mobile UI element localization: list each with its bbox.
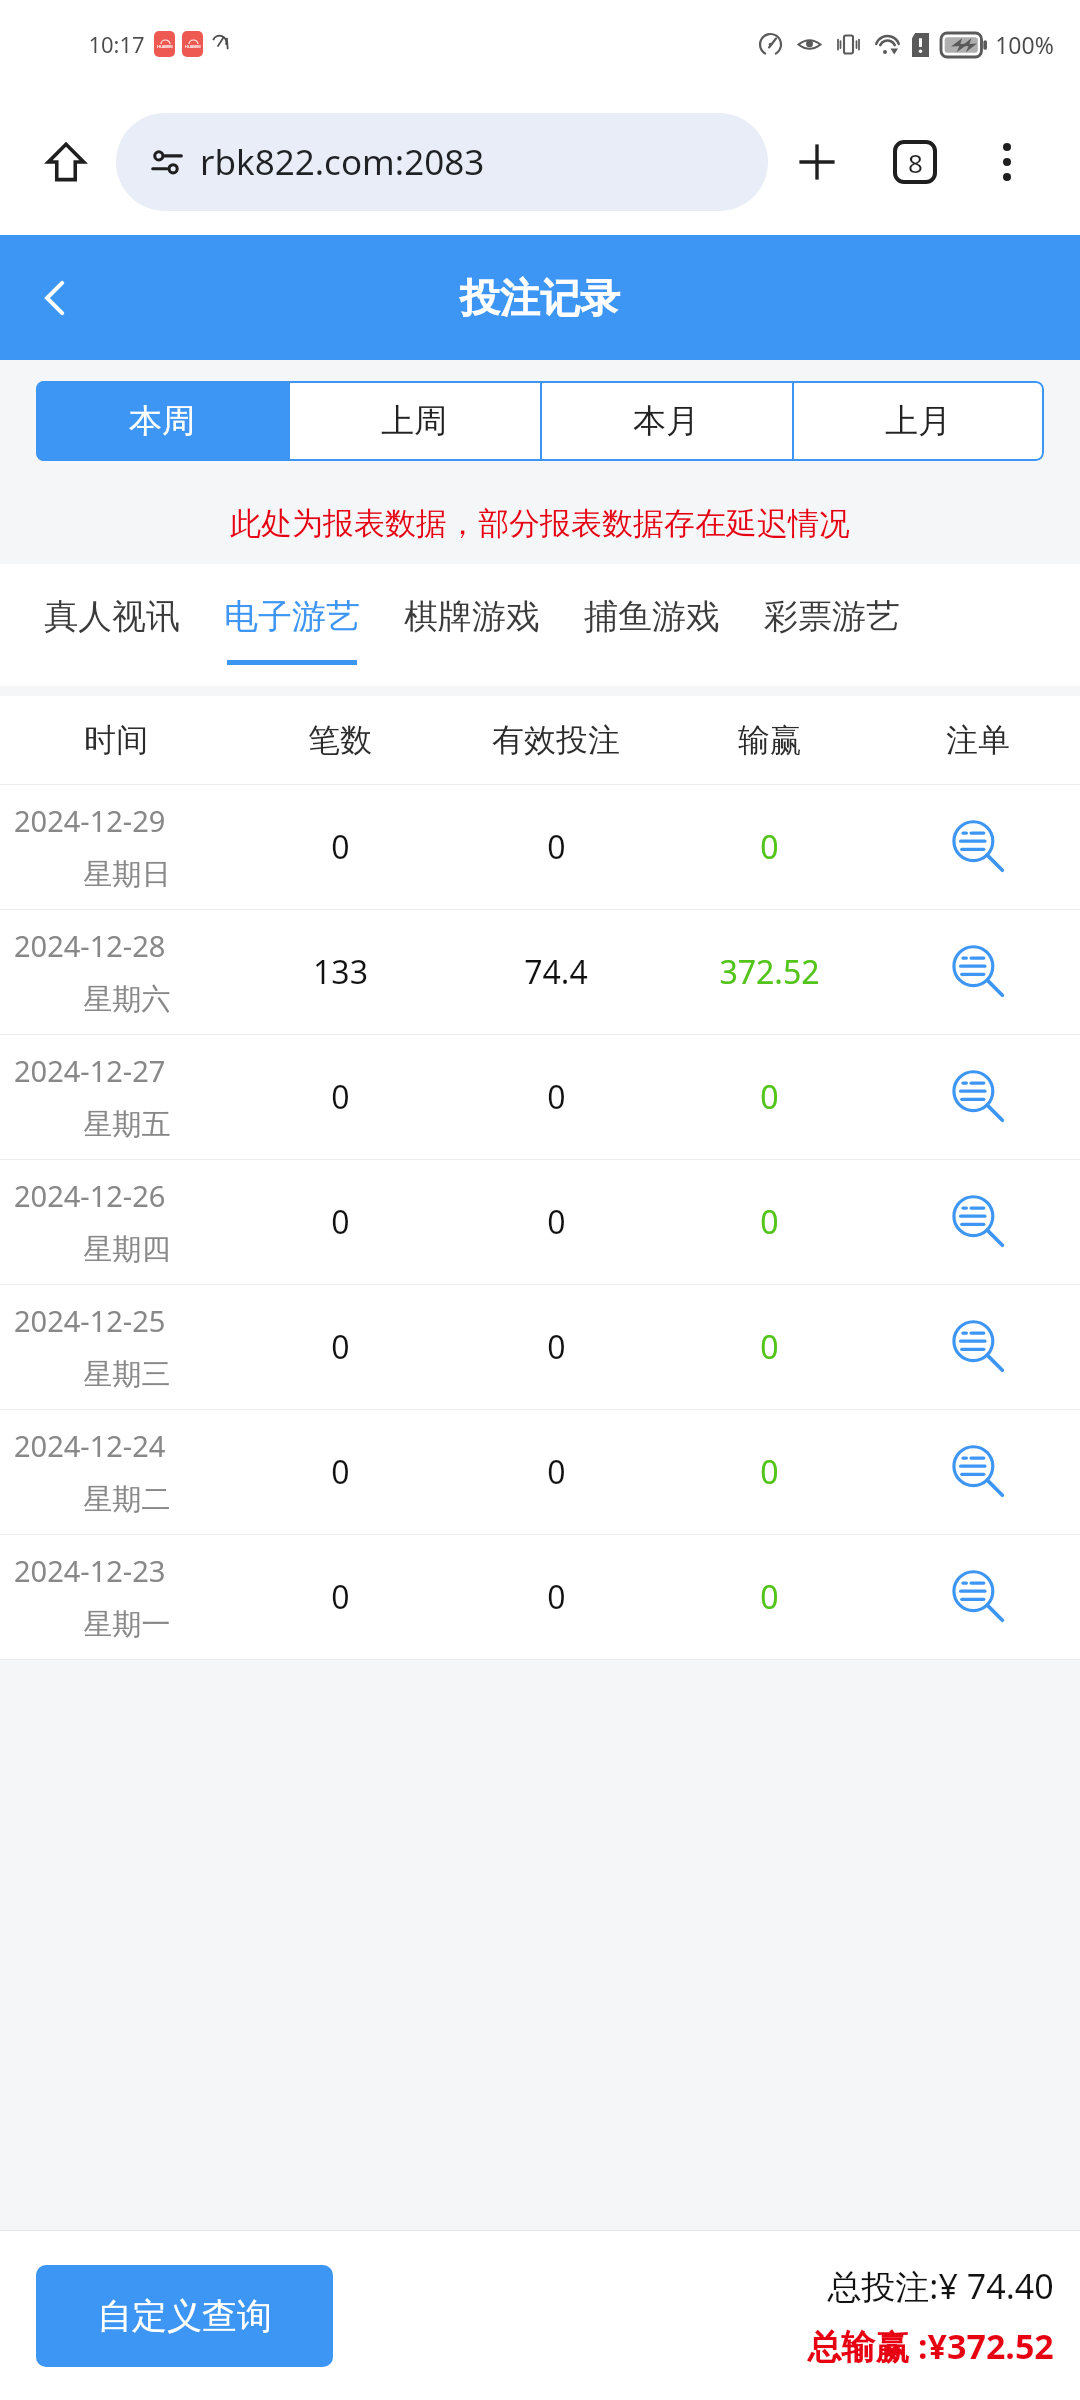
staticText: 2024-12-24 (14, 1426, 232, 1465)
button[interactable]: 上周 (288, 381, 540, 461)
staticText: 0 (331, 1325, 350, 1369)
button[interactable]: 查看注单 (936, 1430, 1020, 1514)
staticText: 上周 (381, 400, 447, 442)
button[interactable]: 查看注单 (936, 1055, 1020, 1139)
staticText: 0 (331, 1575, 350, 1619)
staticText: 10:17 (88, 29, 145, 59)
button[interactable]: 真人视讯 (22, 564, 202, 686)
staticText: 372.52 (719, 950, 820, 994)
staticText: 0 (760, 1575, 779, 1619)
staticText: 笔数 (308, 720, 372, 760)
staticText: 总输赢 :¥372.52 (807, 2323, 1054, 2369)
staticText: 0 (760, 825, 779, 869)
button[interactable]: 自定义查询 (36, 2265, 333, 2367)
staticText: 0 (547, 1575, 566, 1619)
button[interactable]: New tab (768, 113, 866, 211)
staticText: 星期三 (22, 1356, 232, 1393)
staticText: 0 (547, 1200, 566, 1244)
button[interactable]: 2024-12-27 (0, 1035, 1080, 1159)
button[interactable]: 查看注单 (936, 805, 1020, 889)
button[interactable]: 上月 (792, 381, 1044, 461)
staticText: 星期六 (22, 981, 232, 1018)
staticText: 0 (760, 1075, 779, 1119)
staticText: 有效投注 (492, 720, 620, 760)
button[interactable]: 2024-12-29 (0, 785, 1080, 909)
staticText: 2024-12-28 (14, 926, 232, 965)
button[interactable]: 2024-12-25 (0, 1285, 1080, 1409)
staticText: 0 (760, 1450, 779, 1494)
staticText: 星期二 (22, 1481, 232, 1518)
button[interactable]: 查看注单 (936, 1555, 1020, 1639)
staticText: 0 (547, 1450, 566, 1494)
staticText: 此处为报表数据，部分报表数据存在延迟情况 (230, 504, 850, 543)
button[interactable]: 本月 (540, 381, 792, 461)
staticText: 上月 (885, 400, 951, 442)
staticText: 0 (331, 1450, 350, 1494)
staticText: 8 (908, 145, 923, 180)
button[interactable]: rbk822.com:2083 (116, 113, 768, 211)
button[interactable]: Back (0, 235, 110, 360)
staticText: 投注记录 (460, 273, 620, 323)
button[interactable]: 查看注单 (936, 1180, 1020, 1264)
staticText: 2024-12-23 (14, 1551, 232, 1590)
button[interactable]: 2024-12-28 (0, 910, 1080, 1034)
staticText: 真人视讯 (44, 595, 180, 638)
staticText: 2024-12-29 (14, 801, 232, 840)
staticText: 133 (313, 950, 368, 994)
button[interactable]: 查看注单 (936, 1305, 1020, 1389)
staticText: 捕鱼游戏 (584, 595, 720, 638)
button[interactable]: 捕鱼游戏 (562, 564, 742, 686)
button[interactable]: 彩票游艺 (742, 564, 922, 686)
staticText: 100% (995, 29, 1054, 60)
button[interactable]: 查看注单 (936, 930, 1020, 1014)
staticText: 2024-12-27 (14, 1051, 232, 1090)
staticText: 0 (547, 1325, 566, 1369)
staticText: 0 (331, 825, 350, 869)
staticText: 2024-12-26 (14, 1176, 232, 1215)
staticText: 74.4 (524, 950, 588, 994)
staticText: 0 (547, 825, 566, 869)
staticText: HUAWEI (185, 44, 201, 49)
staticText: HUAWEI (157, 44, 173, 49)
staticText: 本周 (129, 400, 195, 442)
staticText: 星期一 (22, 1606, 232, 1643)
staticText: 电子游艺 (224, 595, 360, 638)
button[interactable]: 2024-12-24 (0, 1410, 1080, 1534)
staticText: rbk822.com:2083 (200, 138, 485, 186)
staticText: 星期五 (22, 1106, 232, 1143)
button[interactable]: 棋牌游戏 (382, 564, 562, 686)
staticText: 彩票游艺 (764, 595, 900, 638)
staticText: 棋牌游戏 (404, 595, 540, 638)
button[interactable]: 2024-12-23 (0, 1535, 1080, 1659)
staticText: 0 (760, 1200, 779, 1244)
staticText: 2024-12-25 (14, 1301, 232, 1340)
staticText: 本月 (633, 400, 699, 442)
staticText: 星期日 (22, 856, 232, 893)
button[interactable]: 本周 (36, 381, 288, 461)
button[interactable]: More options (964, 119, 1050, 205)
staticText: 总投注:¥ 74.40 (827, 2263, 1054, 2309)
staticText: 星期四 (22, 1231, 232, 1268)
staticText: 0 (760, 1325, 779, 1369)
button[interactable]: 电子游艺 (202, 564, 382, 686)
button[interactable]: Home (30, 126, 102, 198)
button[interactable]: Tabs: 8 (866, 113, 964, 211)
staticText: 0 (331, 1200, 350, 1244)
staticText: 注单 (946, 720, 1010, 760)
button[interactable]: 2024-12-26 (0, 1160, 1080, 1284)
staticText: 时间 (84, 720, 148, 760)
staticText: 自定义查询 (97, 2294, 272, 2338)
staticText: 0 (547, 1075, 566, 1119)
staticText: 0 (331, 1075, 350, 1119)
staticText: 输赢 (738, 720, 802, 760)
